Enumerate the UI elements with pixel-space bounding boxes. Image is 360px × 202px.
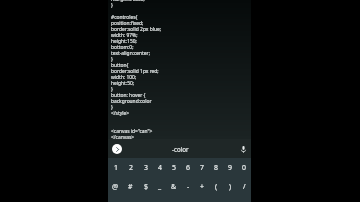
button[interactable]: 1 <box>108 158 123 177</box>
staticText: margin:0 auto; <box>111 0 145 2</box>
button[interactable]: 2 <box>123 158 138 177</box>
button[interactable]: + <box>195 177 209 196</box>
staticText: </canvas> <box>111 134 135 140</box>
button[interactable]: 9 <box>223 158 237 177</box>
staticText: } <box>111 104 113 110</box>
button[interactable]: ) <box>223 177 237 196</box>
staticText: 2 <box>129 163 133 172</box>
staticText: <canvas id="can"> <box>111 128 153 134</box>
button[interactable]: & <box>167 177 181 196</box>
staticText: height:50; <box>111 80 135 86</box>
staticText: text-align:center; <box>111 50 150 56</box>
staticText: 5 <box>172 163 176 172</box>
button[interactable]: 3 <box>138 158 153 177</box>
button[interactable]: 7 <box>195 158 209 177</box>
staticText: </style> <box>111 110 130 116</box>
staticText: bottom:0; <box>111 44 134 50</box>
staticText: height:150; <box>111 38 137 44</box>
button[interactable]: Expand suggestions <box>112 144 122 154</box>
staticText: $ <box>144 182 148 191</box>
staticText: 0 <box>242 163 246 172</box>
button[interactable]: 4 <box>153 158 167 177</box>
staticText: border:solid 1px red; <box>111 68 159 74</box>
staticText: _ <box>158 182 162 191</box>
button[interactable]: Voice input <box>238 144 248 154</box>
staticText: & <box>171 182 177 191</box>
button[interactable]: - <box>181 177 195 196</box>
button[interactable]: 6 <box>181 158 195 177</box>
staticText: 9 <box>228 163 232 172</box>
staticText: # <box>128 182 133 191</box>
staticText: } <box>111 56 113 62</box>
button[interactable]: 0 <box>237 158 251 177</box>
staticText: ) <box>229 182 232 191</box>
staticText: ( <box>215 182 218 191</box>
staticText: position:fixed; <box>111 20 144 26</box>
staticText: button: hover { <box>111 92 146 98</box>
staticText: + <box>200 182 204 191</box>
staticText: - <box>187 182 190 191</box>
staticText: button{ <box>111 62 129 68</box>
staticText: 1 <box>114 163 118 172</box>
staticText: 3 <box>144 163 148 172</box>
staticText: / <box>243 182 246 191</box>
staticText: -color <box>172 145 189 153</box>
staticText: 4 <box>158 163 162 172</box>
button[interactable]: 5 <box>167 158 181 177</box>
button[interactable]: # <box>123 177 138 196</box>
button[interactable]: 8 <box>209 158 223 177</box>
button[interactable]: @ <box>108 177 123 196</box>
button[interactable]: ( <box>209 177 223 196</box>
staticText: 7 <box>200 163 204 172</box>
staticText: width: 100; <box>111 74 137 80</box>
staticText: background:color <box>111 98 152 104</box>
button[interactable]: $ <box>138 177 153 196</box>
staticText: width: 97%; <box>111 32 138 38</box>
staticText: @ <box>112 182 119 191</box>
staticText: #controles{ <box>111 14 138 20</box>
staticText: } <box>111 2 113 8</box>
staticText: 8 <box>214 163 218 172</box>
staticText: 6 <box>186 163 190 172</box>
button[interactable]: / <box>237 177 251 196</box>
button[interactable]: _ <box>153 177 167 196</box>
staticText: border:solid 2px blue; <box>111 26 162 32</box>
staticText: } <box>111 86 113 92</box>
